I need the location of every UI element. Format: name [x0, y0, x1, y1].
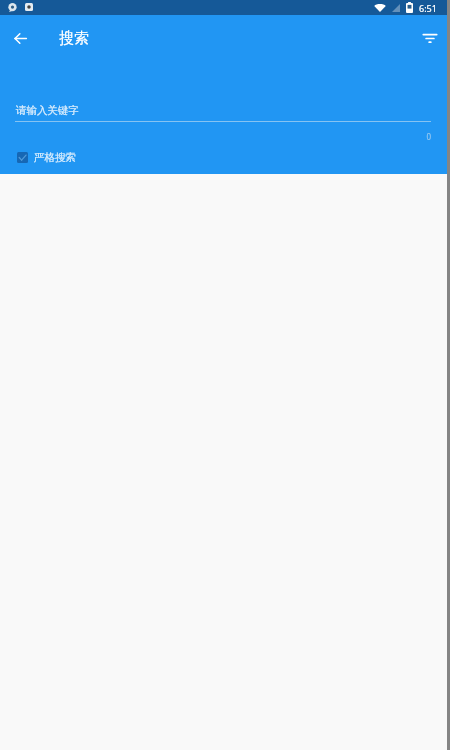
- button[interactable]: 严格搜索: [17, 147, 76, 167]
- button[interactable]: Back: [2, 16, 38, 60]
- staticText: 搜索: [59, 29, 89, 48]
- button[interactable]: Filter: [412, 16, 448, 60]
- staticText: 严格搜索: [34, 151, 76, 164]
- staticText: 6:51: [419, 2, 437, 14]
- staticText: 请输入关键字: [16, 104, 79, 117]
- staticText: 0: [415, 131, 431, 142]
